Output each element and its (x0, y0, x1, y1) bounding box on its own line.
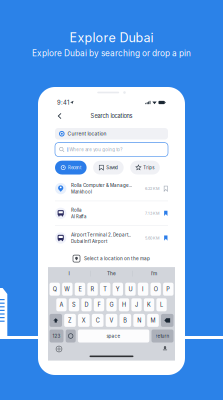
button[interactable]: Y (113, 283, 123, 296)
button[interactable]: K (144, 298, 154, 311)
staticText: W (64, 286, 70, 293)
button[interactable]: Saved (93, 161, 124, 174)
button[interactable]: I'm (133, 267, 175, 280)
staticText: Recent (68, 165, 81, 170)
button[interactable]: G (106, 298, 117, 311)
staticText: Dubai Int'l Airport (71, 239, 107, 244)
button[interactable]: Airport Terminal 2, Depart... (55, 226, 168, 250)
staticText: 9:41 (57, 99, 69, 106)
staticText: Y (116, 286, 120, 293)
button[interactable]: D (81, 298, 92, 311)
staticText: U (128, 286, 132, 293)
button[interactable]: I (138, 283, 148, 296)
staticText: V (109, 317, 113, 324)
button[interactable]: P (163, 283, 173, 296)
staticText: Select a location on the map (84, 256, 150, 261)
button[interactable]: Current location (55, 128, 168, 139)
staticText: Current location (68, 131, 107, 137)
staticText: Rolla (71, 207, 82, 213)
staticText: A (59, 301, 63, 308)
staticText: Saved (106, 165, 118, 170)
staticText: 6.22 KM (145, 186, 159, 191)
button[interactable]: F (94, 298, 104, 311)
button[interactable]: A (56, 298, 67, 311)
staticText: M (150, 317, 155, 324)
button[interactable]: Z (64, 314, 76, 327)
staticText: Airport Terminal 2, Depart... (71, 232, 131, 238)
button[interactable]: H (119, 298, 129, 311)
staticText: J (135, 301, 138, 308)
staticText: C (96, 317, 100, 324)
button[interactable]: Back (52, 110, 67, 122)
staticText: S (72, 301, 76, 308)
button[interactable]: E (75, 283, 85, 296)
staticText: B (123, 317, 127, 324)
button[interactable]: Recent (55, 161, 87, 174)
button[interactable]: O (150, 283, 161, 296)
button[interactable]: I (48, 267, 90, 280)
button[interactable]: R (87, 283, 98, 296)
staticText: I'm (151, 271, 157, 276)
button[interactable]: T (100, 283, 110, 296)
button[interactable]: L (156, 298, 167, 311)
staticText: Mankhool (71, 189, 92, 195)
staticText: 7.13 KM (145, 211, 159, 216)
button[interactable]: V (106, 314, 117, 327)
button[interactable]: C (92, 314, 103, 327)
button[interactable]: Q (49, 283, 60, 296)
staticText: 123 (52, 333, 60, 339)
staticText: 5.60 KM (145, 236, 159, 240)
button[interactable] (161, 314, 173, 327)
staticText: Explore Dubai by searching or drop a pin (32, 48, 191, 58)
button[interactable]: U (125, 283, 136, 296)
staticText: X (82, 317, 86, 324)
staticText: Explore Dubai (69, 30, 153, 45)
button[interactable]: Switch keyboard (56, 346, 62, 352)
staticText: E (78, 286, 81, 293)
staticText: Al Raffa (71, 214, 86, 219)
staticText: P (166, 286, 170, 293)
staticText: D (84, 301, 88, 308)
button[interactable]: Trips (130, 161, 160, 174)
button[interactable]: Rolla Computer & Manage... (55, 176, 168, 201)
staticText: G (109, 301, 113, 308)
staticText: Q (53, 286, 57, 293)
button[interactable]: Rolla (55, 201, 168, 226)
staticText: L (160, 301, 163, 308)
button[interactable]: X (78, 314, 90, 327)
button[interactable]: return (151, 329, 173, 342)
staticText: H (122, 301, 126, 308)
staticText: N (137, 317, 141, 324)
button[interactable]: N (133, 314, 145, 327)
staticText: I (142, 286, 144, 293)
button[interactable]: W (62, 283, 72, 296)
staticText: Search locations (90, 113, 132, 119)
staticText: Rolla Computer & Manage... (71, 183, 132, 188)
button[interactable]: space (78, 329, 149, 342)
staticText: The (107, 271, 116, 276)
button[interactable]: 123 (49, 329, 63, 342)
staticText: Z (68, 317, 72, 324)
button[interactable] (66, 329, 76, 342)
staticText: Trips (143, 165, 154, 170)
staticText: space (107, 333, 121, 339)
staticText: I (68, 271, 69, 276)
button[interactable]: B (119, 314, 131, 327)
staticText: O (154, 286, 158, 293)
button[interactable] (49, 314, 62, 327)
staticText: T (103, 286, 107, 293)
staticText: K (147, 301, 151, 308)
button[interactable]: S (69, 298, 79, 311)
button[interactable]: Where are you going to? (55, 143, 168, 156)
button[interactable]: Select a location on the map (48, 250, 175, 267)
button[interactable]: J (131, 298, 142, 311)
staticText: Where are you going to? (69, 147, 122, 152)
button[interactable]: The (90, 267, 133, 280)
button[interactable]: Dictate (163, 346, 167, 352)
staticText: F (97, 301, 100, 308)
staticText: R (91, 286, 95, 293)
button[interactable]: M (147, 314, 159, 327)
staticText: return (155, 333, 169, 339)
